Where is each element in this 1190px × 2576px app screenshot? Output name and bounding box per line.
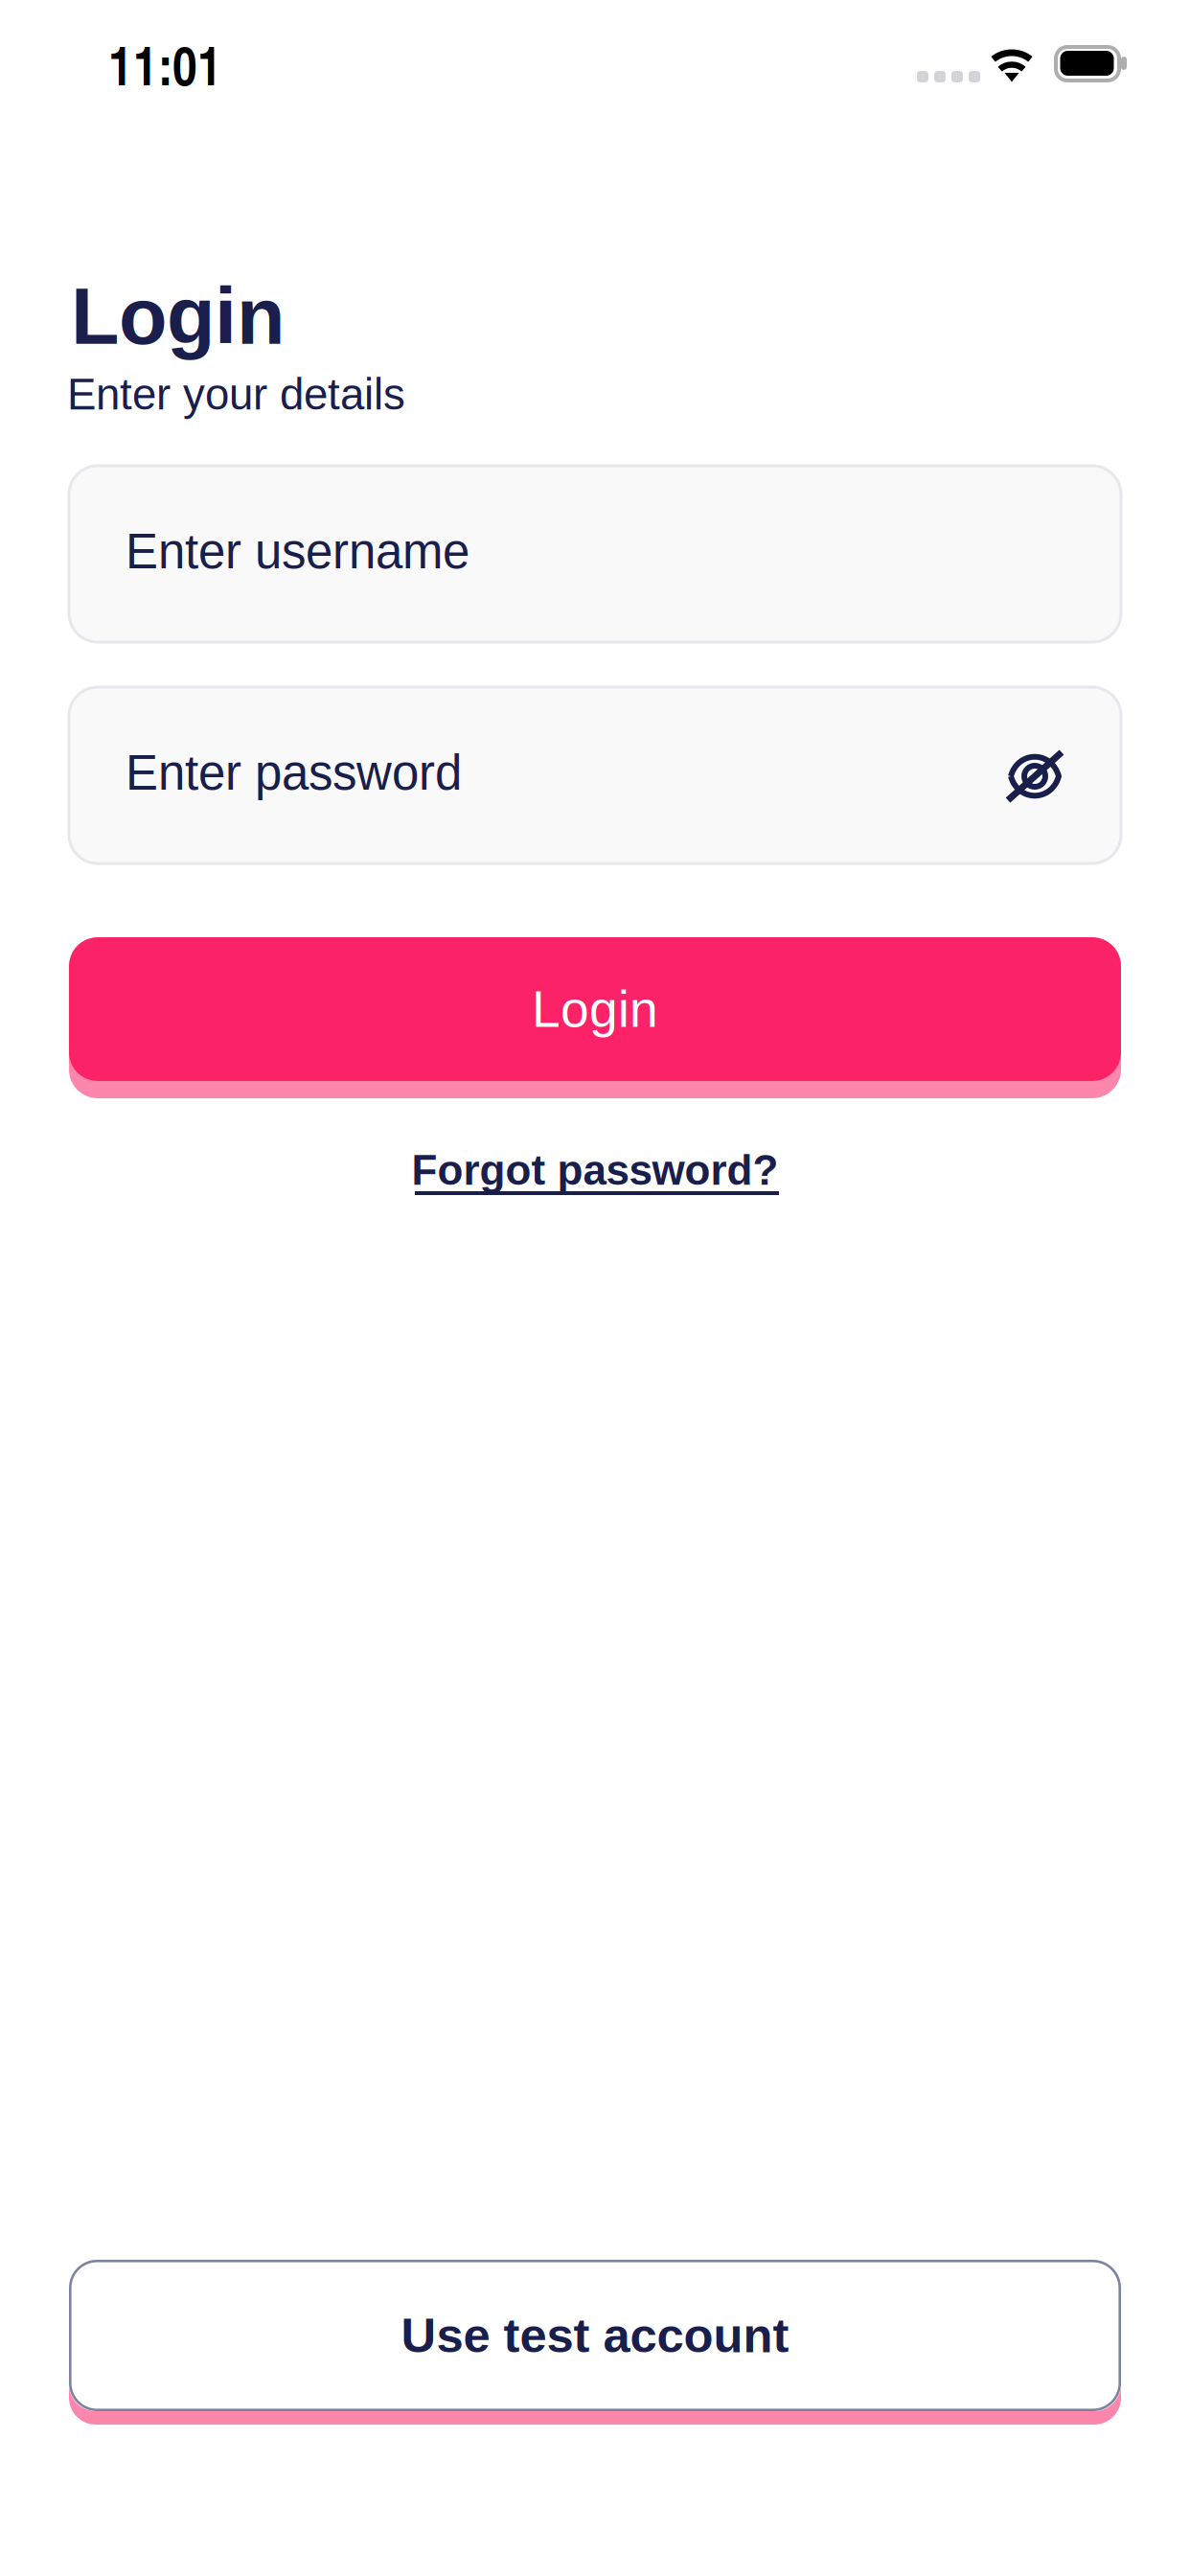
button[interactable]: Enter username [69,466,1121,642]
staticText: Use test account [401,2308,789,2363]
button[interactable]: Forgot password? [69,1140,1121,1200]
button[interactable]: Use test account [69,2260,1121,2425]
button[interactable]: Login [69,937,1121,1098]
staticText: Forgot password? [412,1147,778,1194]
staticText: 11:01 [108,26,222,102]
staticText: Enter username [126,524,469,579]
button[interactable]: Enter password [69,687,1121,863]
button[interactable]: Show password [989,730,1081,822]
staticText: Login [71,272,285,361]
staticText: Enter password [126,746,462,800]
staticText: Enter your details [67,370,405,419]
staticText: Login [532,981,658,1038]
